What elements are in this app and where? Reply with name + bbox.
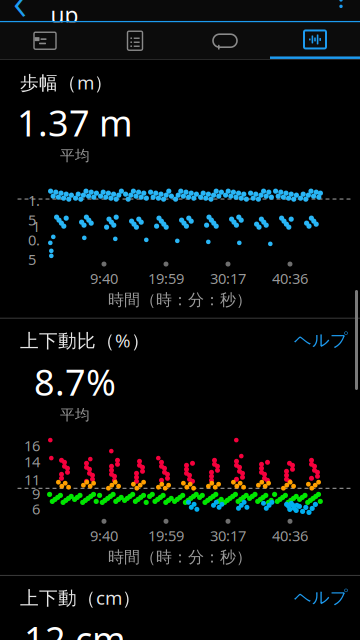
staticText: 6 [32, 499, 40, 519]
staticText: 8.7% [34, 358, 116, 406]
staticText: 40:36 [272, 526, 308, 545]
staticText: 12 cm [24, 615, 126, 640]
staticText: 1000m×10(R200m)build-up [50, 0, 311, 30]
staticText: 14 [24, 452, 40, 471]
staticText: ‹ [13, 0, 27, 35]
staticText: 上下動（cm） [20, 585, 141, 610]
staticText: 時間（時：分：秒） [108, 290, 252, 310]
button[interactable]: Map [0, 23, 90, 59]
button[interactable]: Back [0, 0, 40, 21]
staticText: 9 [32, 484, 40, 503]
staticText: 1.37 m [17, 99, 133, 146]
staticText: 30:17 [210, 526, 246, 545]
staticText: 上下動比（%） [20, 328, 150, 353]
staticText: 11 [24, 470, 40, 489]
button[interactable]: Laps [180, 23, 270, 59]
staticText: ヘルプ [294, 330, 348, 351]
staticText: 9:40 [90, 269, 118, 288]
staticText: 19:59 [148, 269, 184, 288]
staticText: 19:59 [148, 526, 184, 545]
staticText: 1.5 [28, 191, 40, 230]
button[interactable]: Details [90, 23, 180, 59]
staticText: 平均 [60, 406, 90, 424]
staticText: 30:17 [210, 269, 246, 288]
staticText: 40:36 [272, 269, 308, 288]
button[interactable]: ヘルプ [294, 327, 360, 354]
button[interactable]: Dynamics [270, 22, 360, 59]
staticText: 1 [32, 217, 40, 236]
staticText: 16 [24, 436, 40, 455]
staticText: 時間（時：分：秒） [108, 547, 252, 567]
staticText: 歩幅（m） [20, 70, 113, 95]
staticText: 平均 [60, 146, 90, 164]
button[interactable]: More options [322, 0, 360, 21]
button[interactable]: ヘルプ [294, 584, 360, 611]
staticText: 9:40 [90, 526, 118, 545]
staticText: ヘルプ [294, 587, 348, 608]
staticText: 0.5 [28, 230, 40, 269]
